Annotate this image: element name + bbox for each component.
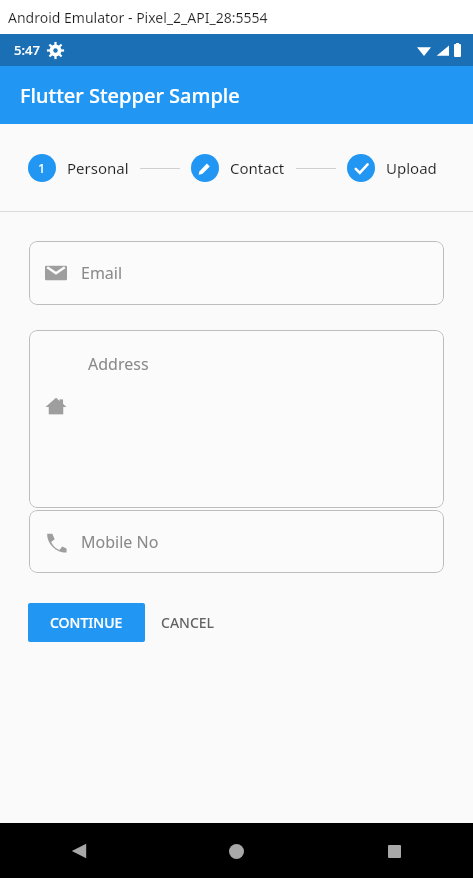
staticText: Address xyxy=(88,353,149,375)
staticText: CANCEL xyxy=(161,613,215,632)
staticText: Mobile No xyxy=(81,531,159,553)
staticText: 1 xyxy=(38,159,46,177)
button[interactable]: CANCEL xyxy=(145,603,231,642)
button[interactable]: Address xyxy=(29,330,444,508)
button[interactable]: CONTINUE xyxy=(28,603,145,642)
button[interactable]: Upload xyxy=(347,154,437,182)
button[interactable]: Recent apps xyxy=(370,827,418,875)
staticText: 5:47 xyxy=(14,41,40,59)
button[interactable]: Email xyxy=(29,241,444,305)
button[interactable]: Mobile No xyxy=(29,510,444,573)
staticText: CONTINUE xyxy=(50,613,123,632)
staticText: Personal xyxy=(67,158,129,178)
button[interactable]: Home xyxy=(212,827,260,875)
staticText: Android Emulator - Pixel_2_API_28:5554 xyxy=(8,8,268,27)
staticText: Upload xyxy=(386,158,437,178)
staticText: Email xyxy=(81,262,123,284)
button[interactable]: 1 xyxy=(28,154,129,182)
button[interactable]: Back xyxy=(55,827,103,875)
staticText: Flutter Stepper Sample xyxy=(20,82,240,109)
button[interactable]: Contact xyxy=(191,154,285,182)
staticText: Contact xyxy=(230,158,285,178)
